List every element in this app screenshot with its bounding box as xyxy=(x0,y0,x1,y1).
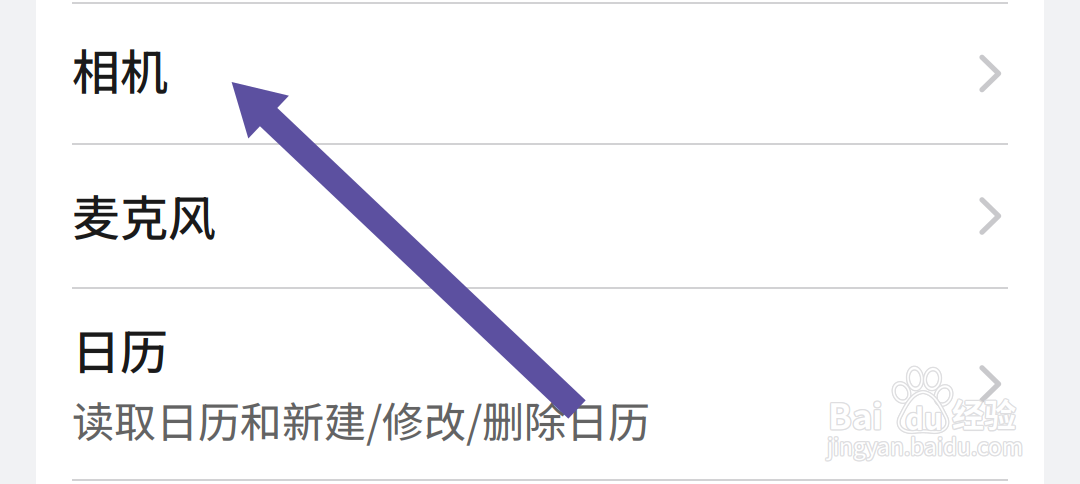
staticText: jingyan.baidu.com xyxy=(827,428,1023,460)
staticText: Bai xyxy=(827,390,882,440)
staticText: Bai xyxy=(829,390,884,440)
staticText: du xyxy=(904,395,942,438)
staticText: Bai xyxy=(829,388,884,438)
staticText: Bai xyxy=(828,390,883,440)
staticText: Bai xyxy=(829,389,884,439)
staticText: jingyan.baidu.com xyxy=(826,429,1022,462)
staticText: du xyxy=(904,396,942,438)
staticText: du xyxy=(904,397,942,439)
staticText: Bai xyxy=(827,388,882,438)
staticText: jingyan.baidu.com xyxy=(826,428,1022,461)
staticText: jingyan.baidu.com xyxy=(827,430,1023,463)
staticText: jingyan.baidu.com xyxy=(826,430,1022,463)
staticText: du xyxy=(906,395,944,438)
staticText: du xyxy=(906,397,944,439)
button[interactable]: 日历 xyxy=(36,288,1044,480)
staticText: du xyxy=(905,397,943,440)
staticText: 经验 xyxy=(952,391,1016,438)
staticText: 经验 xyxy=(952,389,1016,435)
staticText: 相机 xyxy=(72,34,168,103)
staticText: du xyxy=(906,396,944,438)
staticText: Bai xyxy=(828,388,883,438)
staticText: 经验 xyxy=(951,389,1015,435)
staticText: 日历 xyxy=(72,314,168,383)
staticText: jingyan.baidu.com xyxy=(828,430,1024,463)
staticText: 麦克风 xyxy=(72,180,216,249)
staticText: Bai xyxy=(827,389,882,439)
staticText: 经验 xyxy=(951,391,1015,437)
staticText: du xyxy=(905,396,943,438)
staticText: Bai xyxy=(828,389,883,439)
staticText: 经验 xyxy=(953,391,1017,437)
staticText: jingyan.baidu.com xyxy=(828,428,1024,461)
staticText: jingyan.baidu.com xyxy=(827,429,1023,462)
staticText: 经验 xyxy=(953,389,1017,435)
staticText: jingyan.baidu.com xyxy=(828,429,1024,462)
staticText: 经验 xyxy=(952,390,1016,436)
staticText: du xyxy=(905,395,943,437)
staticText: 经验 xyxy=(953,390,1017,436)
button[interactable]: 麦克风 xyxy=(36,144,1044,288)
button[interactable]: 相机 xyxy=(36,3,1044,144)
staticText: 读取日历和新建/修改/删除日历 xyxy=(72,389,650,450)
staticText: 经验 xyxy=(951,390,1015,436)
